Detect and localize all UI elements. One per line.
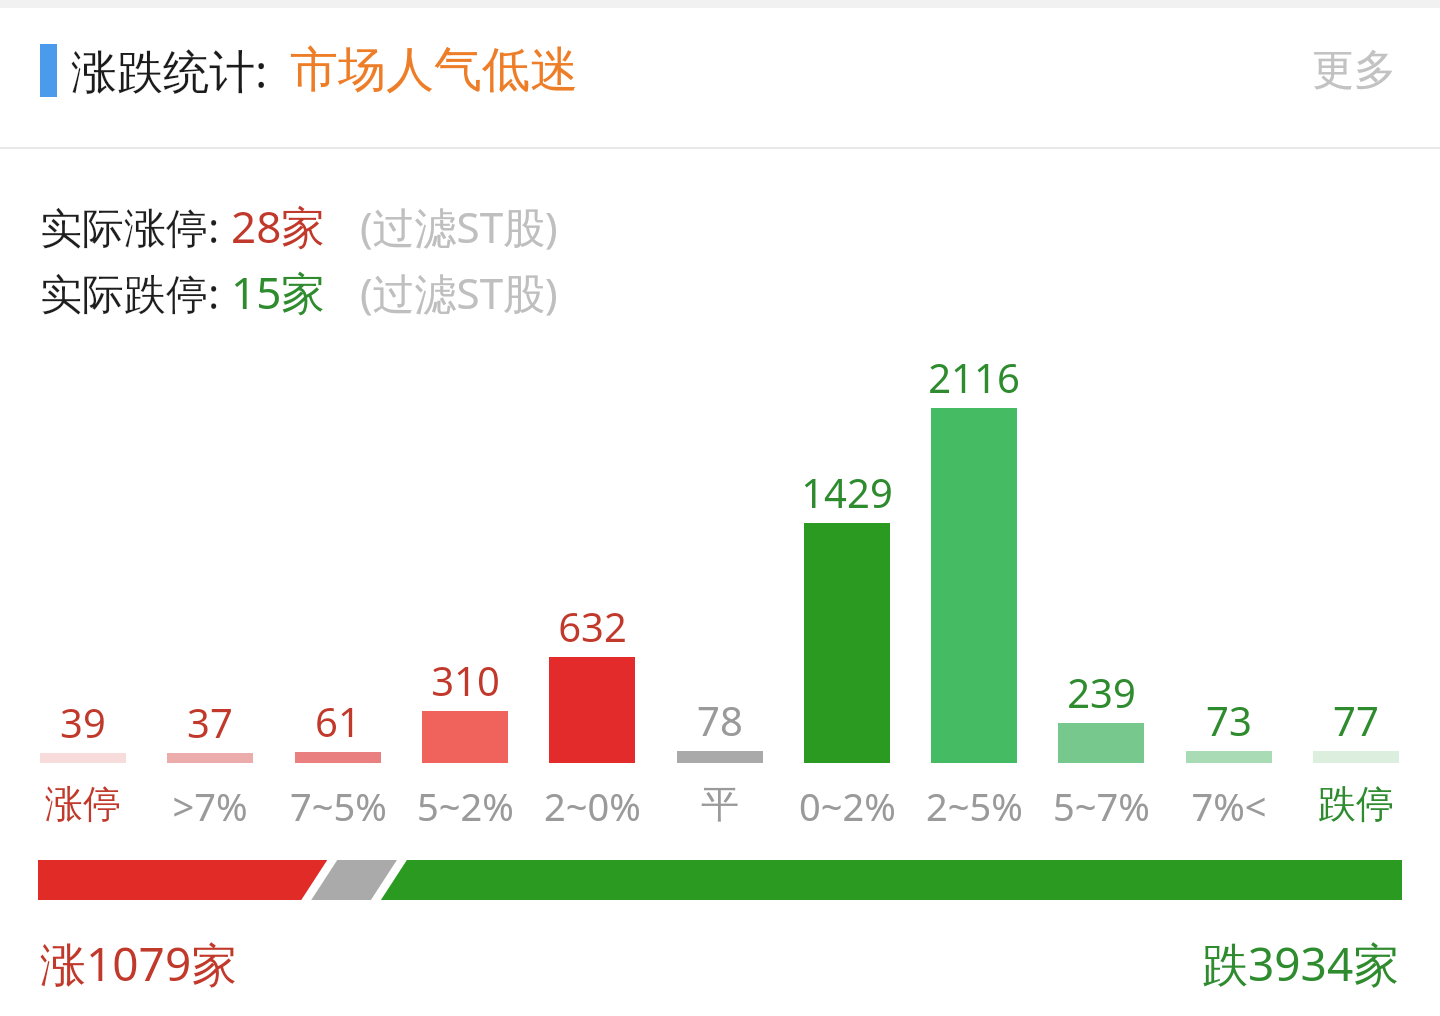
staticText: 实际跌停: (40, 264, 231, 321)
staticText: 7~5% (290, 780, 387, 832)
button[interactable]: 实际跌停: (40, 262, 558, 322)
button[interactable]: 涨跌比例 (0, 855, 1440, 907)
staticText: 2~0% (544, 780, 641, 832)
staticText: 61 (315, 694, 361, 748)
staticText: 15家 (231, 262, 326, 322)
staticText: 7%< (1191, 780, 1267, 832)
button[interactable]: 更多 (1292, 32, 1416, 109)
staticText: 平 (701, 780, 739, 828)
button[interactable]: 涨跌统计: (0, 0, 1440, 140)
staticText: 涨1079家 (40, 932, 238, 995)
staticText: 涨停 (45, 780, 121, 828)
staticText: 市场人气低迷 (290, 40, 578, 100)
button[interactable]: 跌3934家 (1202, 932, 1400, 995)
staticText: 73 (1206, 693, 1252, 747)
staticText: 0~2% (799, 780, 896, 832)
button[interactable]: 实际涨停: (40, 196, 558, 256)
staticText: 310 (431, 653, 500, 707)
staticText: 跌3934家 (1202, 932, 1400, 995)
staticText: 78 (697, 693, 743, 747)
staticText: 632 (558, 599, 627, 653)
staticText: 2116 (928, 350, 1020, 404)
staticText: 28家 (231, 196, 326, 256)
staticText: 77 (1333, 693, 1379, 747)
staticText: 更多 (1312, 44, 1396, 97)
staticText: >7% (172, 780, 248, 832)
staticText: 37 (187, 695, 233, 749)
staticText: 39 (60, 695, 106, 749)
staticText: 239 (1067, 665, 1136, 719)
staticText: 实际涨停: (40, 198, 231, 255)
staticText: 5~2% (417, 780, 514, 832)
staticText: (过滤ST股) (360, 198, 558, 255)
staticText: 2~5% (926, 780, 1023, 832)
staticText: 5~7% (1053, 780, 1150, 832)
staticText: 1429 (801, 465, 893, 519)
button[interactable]: 涨1079家 (40, 932, 238, 995)
staticText: 跌停 (1318, 780, 1394, 828)
staticText: (过滤ST股) (360, 264, 558, 321)
staticText: 涨跌统计: (71, 39, 268, 102)
